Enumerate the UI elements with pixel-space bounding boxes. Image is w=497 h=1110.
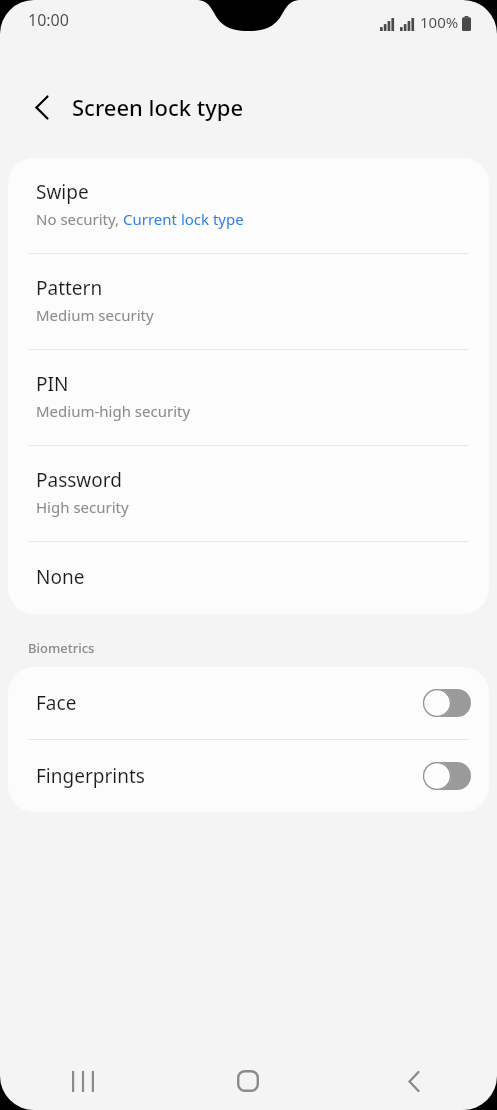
staticText: No security, — [36, 209, 123, 229]
staticText: PIN — [36, 371, 69, 397]
staticText: Face — [36, 690, 77, 716]
staticText: Fingerprints — [36, 763, 145, 789]
button[interactable]: Password — [8, 446, 489, 541]
button[interactable]: Fingerprints — [8, 740, 489, 812]
button[interactable]: Navigate up — [20, 85, 64, 129]
staticText: Current lock type — [123, 209, 244, 229]
button[interactable]: PIN — [8, 350, 489, 445]
staticText: High security — [36, 497, 129, 517]
staticText: Biometrics — [28, 639, 95, 657]
button[interactable]: Swipe — [8, 158, 489, 253]
staticText: 100% — [420, 12, 459, 32]
staticText: Medium security — [36, 305, 154, 325]
button[interactable]: Back — [331, 1052, 497, 1110]
button[interactable]: Face — [8, 667, 489, 739]
button[interactable]: Recent apps — [0, 1052, 165, 1110]
staticText: None — [36, 564, 85, 590]
button[interactable]: Pattern — [8, 254, 489, 349]
button[interactable]: Home — [165, 1052, 331, 1110]
staticText: Medium-high security — [36, 401, 191, 421]
staticText: Screen lock type — [72, 92, 244, 122]
staticText: Password — [36, 467, 122, 493]
button[interactable]: None — [8, 542, 489, 614]
staticText: 10:00 — [28, 9, 69, 31]
staticText: Pattern — [36, 275, 103, 301]
staticText: Swipe — [36, 179, 89, 205]
button[interactable]: Fingerprints toggle — [423, 762, 471, 790]
button[interactable]: Face toggle — [423, 689, 471, 717]
